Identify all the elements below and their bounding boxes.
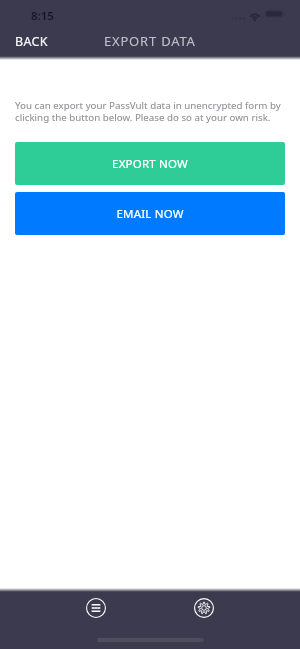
staticText: EXPORT DATA [104,32,196,50]
button[interactable]: Settings [184,588,224,628]
other: Signal, Wi-Fi and battery status [230,8,286,22]
staticText: You can export your PassVult data in une… [15,99,285,124]
staticText: 8:15 [31,8,54,24]
staticText: EMAIL NOW [116,206,184,222]
button[interactable]: EMAIL NOW [15,192,285,235]
staticText: BACK [15,33,48,50]
button[interactable]: BACK [0,26,60,56]
button[interactable]: EXPORT NOW [15,142,285,185]
staticText: EXPORT NOW [112,156,188,172]
button[interactable]: Menu [76,588,116,628]
